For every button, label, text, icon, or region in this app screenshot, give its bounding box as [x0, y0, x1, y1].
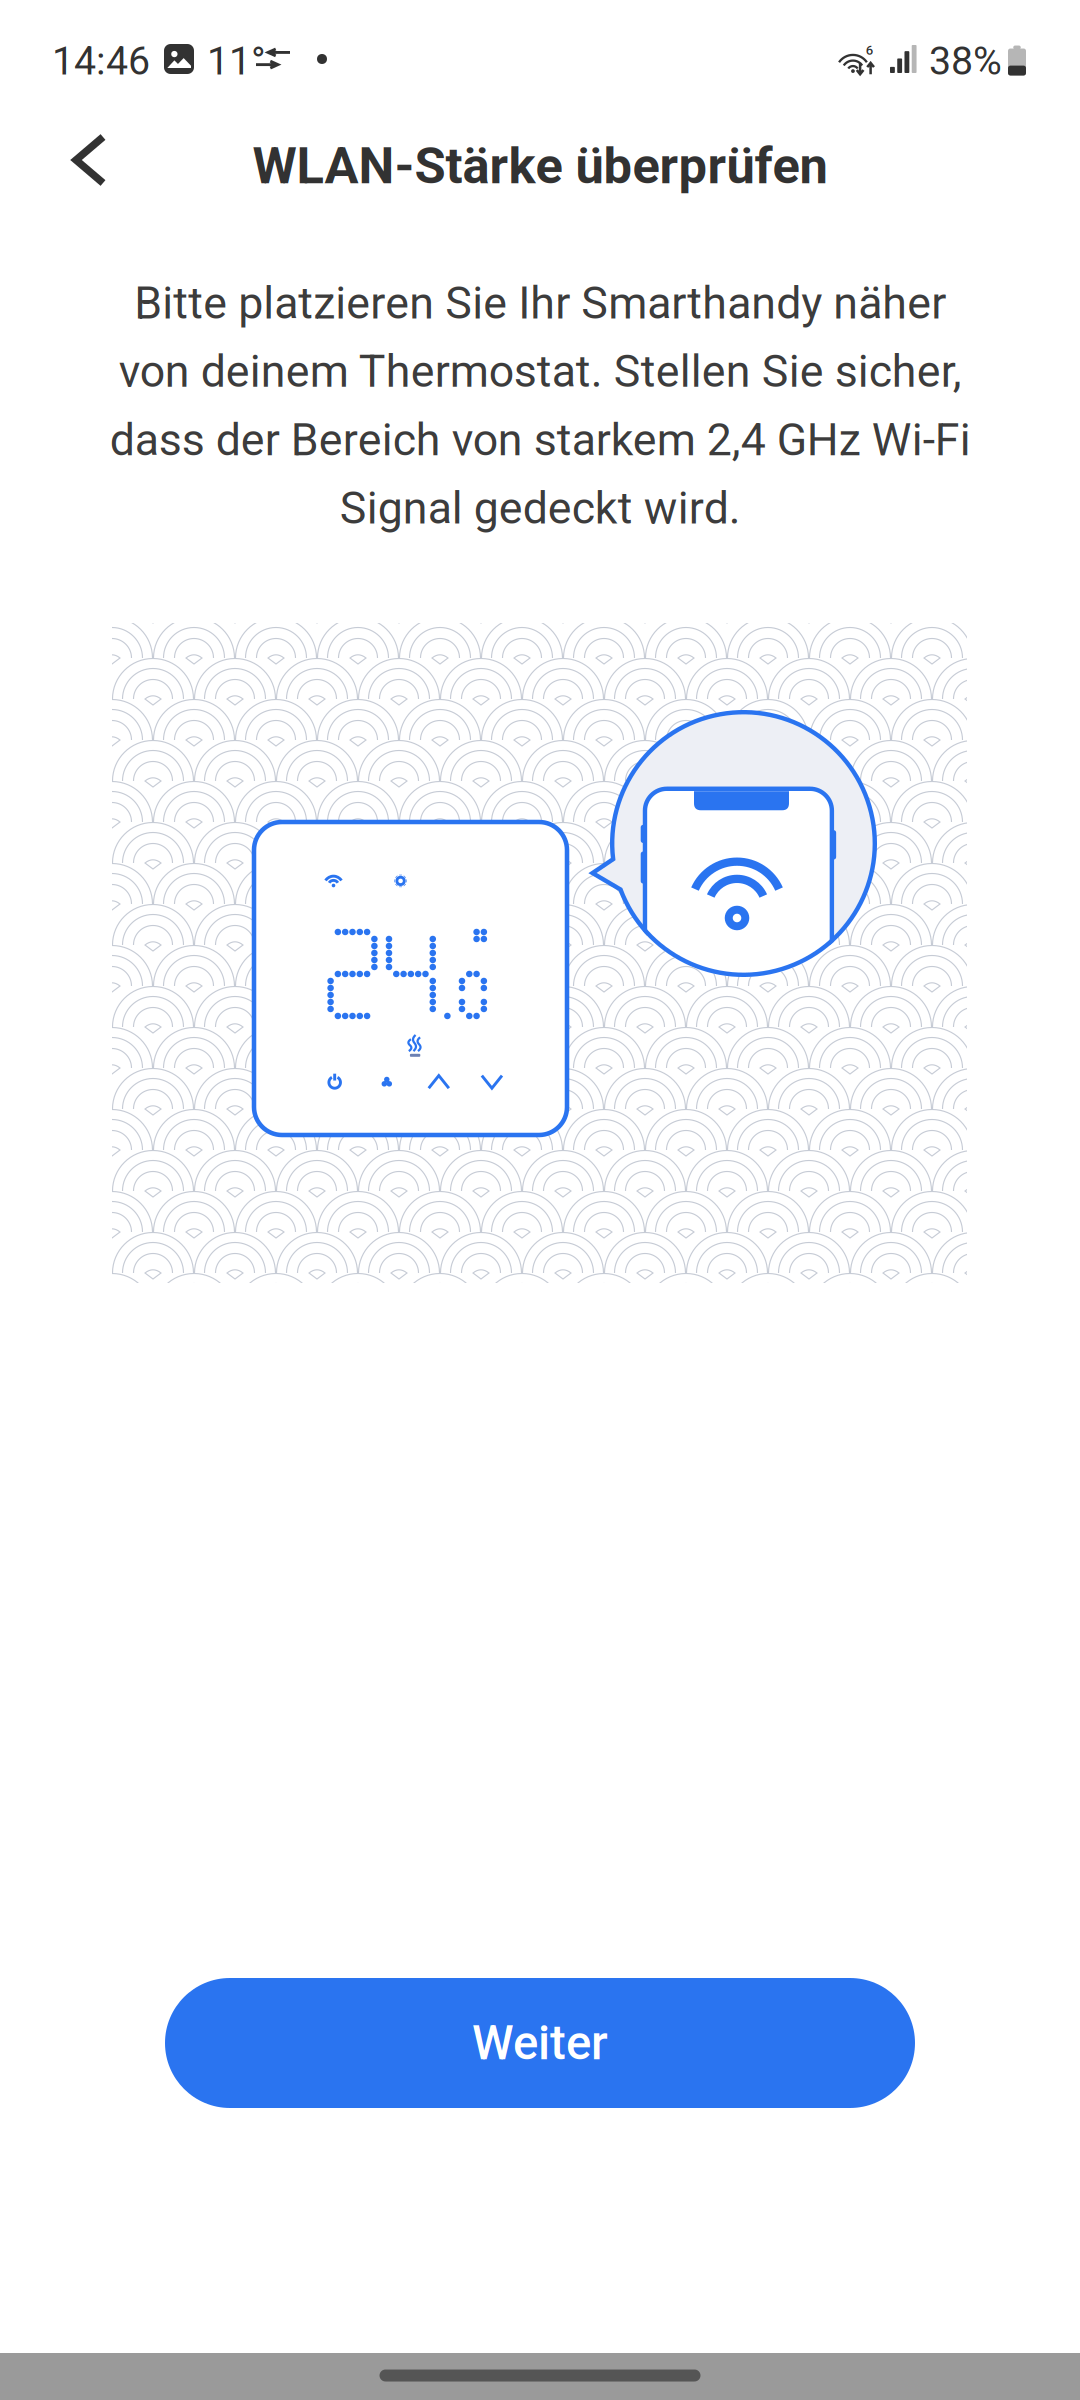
- staticText: 6: [866, 42, 873, 58]
- staticText: Weiter: [472, 2015, 608, 2071]
- staticText: WLAN-Stärke überprüfen: [252, 136, 827, 196]
- button[interactable]: Back: [14, 112, 164, 220]
- staticText: 38%: [929, 38, 1002, 84]
- staticText: Bitte platzieren Sie Ihr Smarthandy nähe…: [109, 277, 970, 534]
- button[interactable]: Weiter: [165, 1978, 915, 2108]
- staticText: 14:46: [52, 38, 150, 84]
- staticText: 11°: [207, 38, 266, 84]
